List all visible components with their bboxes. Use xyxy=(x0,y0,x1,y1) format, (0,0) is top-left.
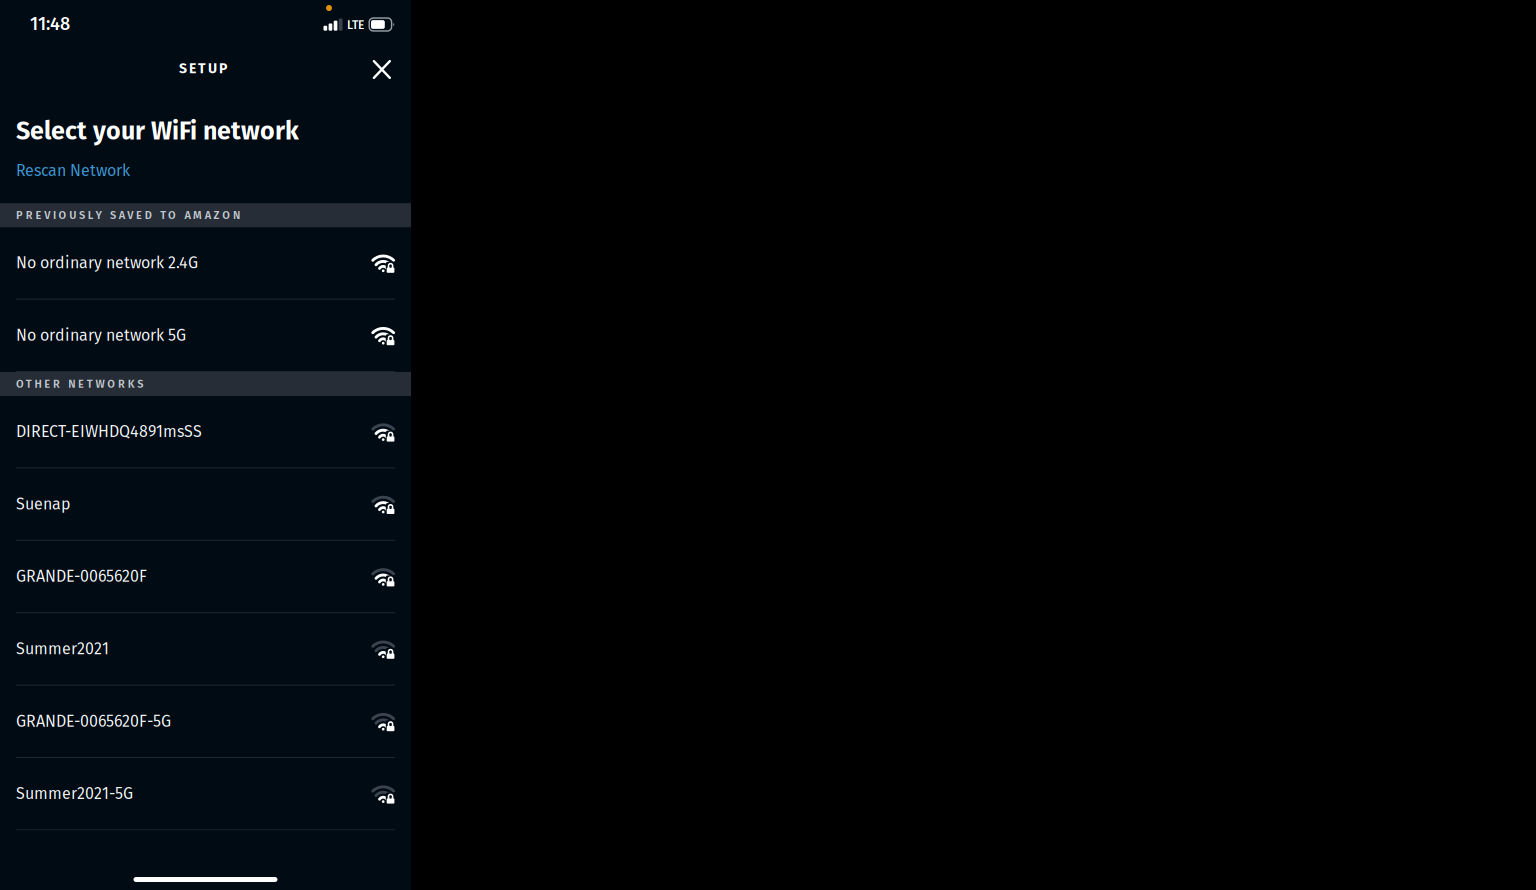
staticText: GRANDE-0065620F xyxy=(16,567,147,586)
button[interactable]: Rescan Network xyxy=(0,146,411,203)
button[interactable]: GRANDE-0065620F-5G xyxy=(0,686,411,758)
staticText: 11:48 xyxy=(30,13,70,35)
button[interactable]: Summer2021 xyxy=(0,613,411,686)
button[interactable]: Suenap xyxy=(0,468,411,541)
button[interactable]: Summer2021-5G xyxy=(0,758,411,830)
button[interactable]: No ordinary network 2.4G xyxy=(0,227,411,300)
staticText: PREVIOUSLY SAVED TO AMAZON xyxy=(16,209,240,222)
staticText: No ordinary network 5G xyxy=(16,326,186,345)
button[interactable]: GRANDE-0065620F xyxy=(0,541,411,613)
button[interactable]: DIRECT-EIWHDQ4891msSS xyxy=(0,396,411,468)
staticText: LTE xyxy=(347,18,364,32)
staticText: Select your WiFi network xyxy=(16,116,299,146)
staticText: SETUP xyxy=(179,60,227,77)
staticText: Rescan Network xyxy=(16,161,130,180)
staticText: OTHER NETWORKS xyxy=(16,377,143,391)
button[interactable]: No ordinary network 5G xyxy=(0,300,411,372)
staticText: Summer2021 xyxy=(16,639,109,658)
staticText: GRANDE-0065620F-5G xyxy=(16,712,171,731)
staticText: Summer2021-5G xyxy=(16,784,133,803)
staticText: No ordinary network 2.4G xyxy=(16,253,198,272)
staticText: DIRECT-EIWHDQ4891msSS xyxy=(16,422,202,441)
button[interactable]: Close setup xyxy=(362,52,402,94)
staticText: Suenap xyxy=(16,494,71,514)
